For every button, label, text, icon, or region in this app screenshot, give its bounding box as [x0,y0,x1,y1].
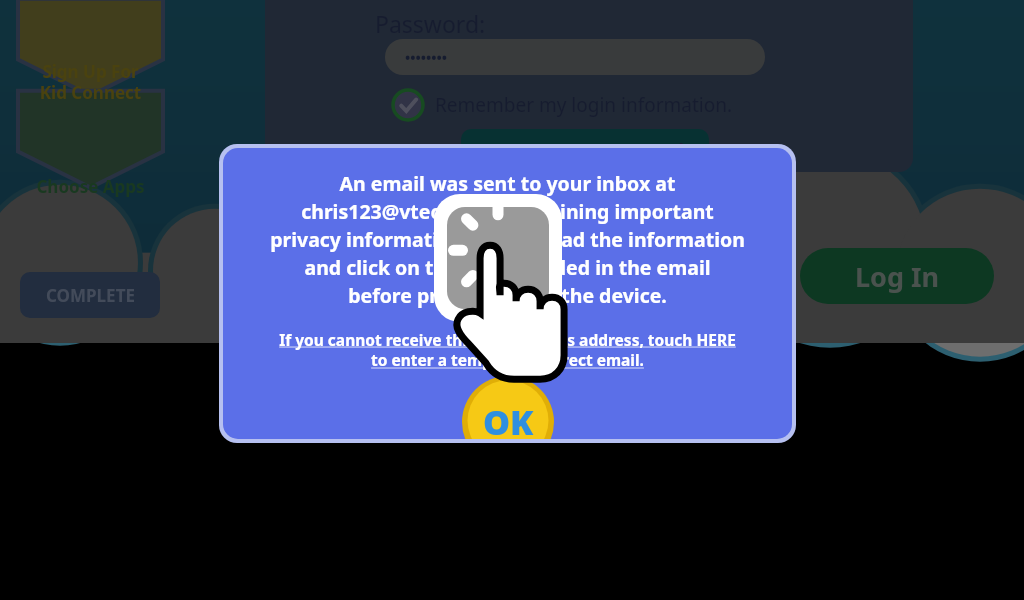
button[interactable]: OK [462,376,554,439]
staticText: COMPLETE [46,284,135,307]
button[interactable]: COMPLETE [20,272,160,318]
staticText: An email was sent to your inbox at chris… [233,170,782,309]
staticText: Sign Up For Kid Connect [18,60,163,104]
staticText: If you cannot receive this email at this… [243,329,772,371]
button[interactable]: Remember my login information. [391,88,733,122]
staticText: Choose Apps [18,175,163,198]
staticText: Remember my login information. [435,92,733,118]
button[interactable]: •••••••• [385,39,765,75]
staticText: Forgot your password? [477,138,693,164]
staticText: OK [483,399,534,439]
button[interactable]: Forgot your password? [461,129,709,173]
button[interactable]: If you cannot receive this email at this… [223,329,792,371]
button[interactable]: Tap here [434,194,594,394]
staticText: •••••••• [405,48,448,67]
staticText: Log In [855,258,940,295]
staticText: Password: [375,8,486,39]
button[interactable]: An email was sent to your inbox at chris… [223,148,792,439]
button[interactable]: Log In [800,248,994,304]
